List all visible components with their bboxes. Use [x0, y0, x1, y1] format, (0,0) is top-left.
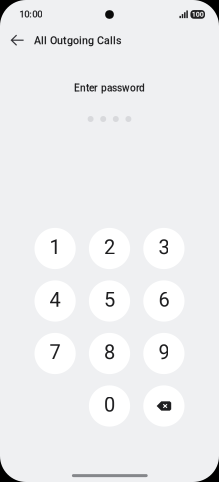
staticText: 8 — [104, 341, 115, 364]
staticText: 100 — [192, 10, 204, 19]
staticText: 4 — [50, 288, 61, 312]
staticText: 7 — [50, 341, 61, 364]
button[interactable]: 9 — [143, 333, 184, 374]
button[interactable]: 1 — [34, 228, 76, 269]
button[interactable]: Delete — [143, 385, 184, 427]
staticText: Enter password — [74, 82, 145, 94]
button[interactable]: 4 — [34, 280, 76, 322]
button[interactable]: 2 — [89, 228, 130, 269]
button[interactable]: 7 — [34, 333, 76, 374]
button[interactable]: Back — [4, 27, 30, 53]
button[interactable]: All Outgoing Calls — [34, 34, 121, 47]
staticText: 10:00 — [19, 9, 42, 20]
staticText: 0 — [104, 393, 115, 417]
button[interactable]: 0 — [89, 385, 130, 427]
button[interactable]: 3 — [143, 228, 184, 269]
button[interactable]: 5 — [89, 280, 130, 322]
staticText: 5 — [104, 288, 115, 312]
button[interactable]: 8 — [89, 333, 130, 374]
staticText: 6 — [158, 288, 169, 312]
staticText: 3 — [158, 236, 169, 259]
staticText: All Outgoing Calls — [34, 34, 121, 47]
staticText: 1 — [50, 236, 61, 259]
staticText: 9 — [158, 341, 169, 364]
staticText: 2 — [104, 236, 115, 259]
button[interactable]: 6 — [143, 280, 184, 322]
